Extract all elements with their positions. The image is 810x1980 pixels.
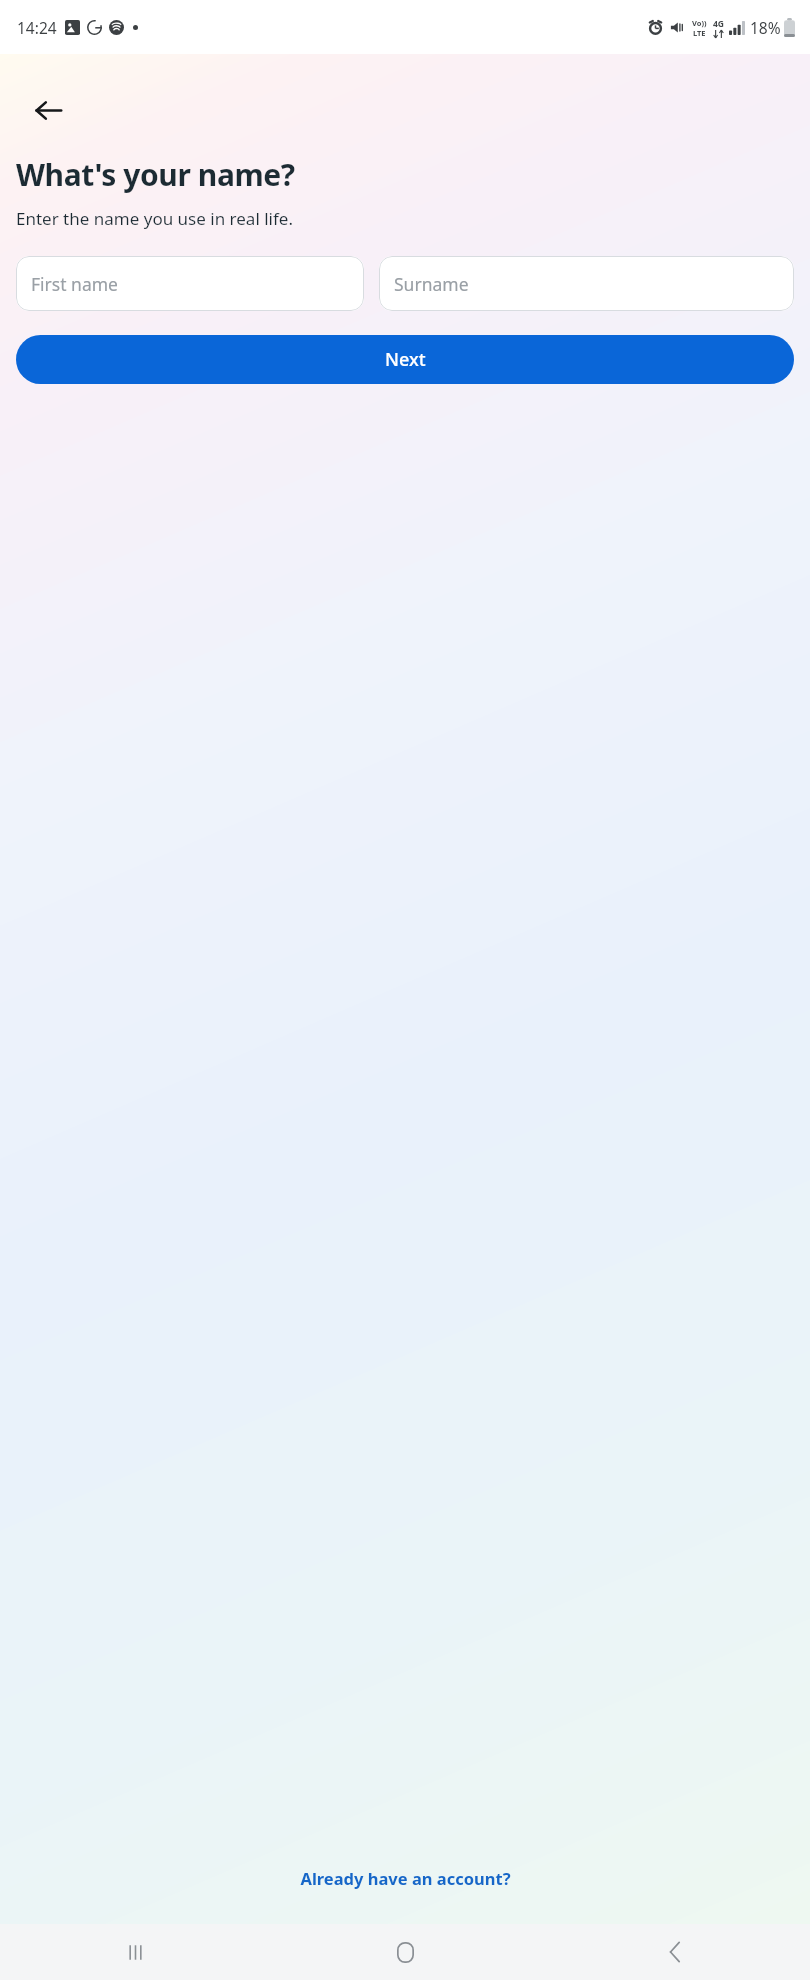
staticText: Vo)): [692, 18, 707, 28]
button[interactable]: Home: [270, 1924, 540, 1980]
staticText: Next: [385, 347, 426, 372]
staticText: First name: [31, 272, 118, 296]
staticText: Enter the name you use in real life.: [16, 207, 293, 230]
staticText: 14:24: [17, 17, 57, 38]
staticText: What's your name?: [16, 154, 295, 195]
button[interactable]: Already have an account?: [16, 1855, 794, 1901]
button[interactable]: Surname: [379, 256, 794, 311]
button[interactable]: Back: [22, 84, 74, 136]
button[interactable]: Next: [16, 335, 794, 384]
staticText: 18%: [750, 17, 781, 38]
staticText: Surname: [394, 272, 469, 296]
staticText: Already have an account?: [300, 1867, 511, 1889]
button[interactable]: Recent apps: [0, 1924, 270, 1980]
button[interactable]: First name: [16, 256, 364, 311]
staticText: LTE: [693, 28, 706, 38]
button[interactable]: Back: [540, 1924, 810, 1980]
staticText: 4G: [713, 18, 725, 30]
